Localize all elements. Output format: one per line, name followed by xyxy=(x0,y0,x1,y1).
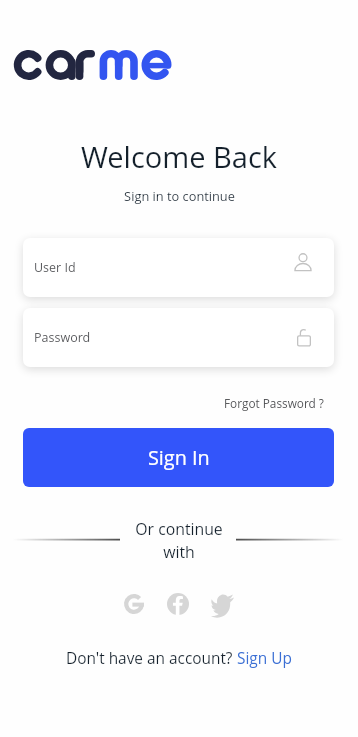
staticText: Or continue with xyxy=(129,518,229,562)
button[interactable]: carme xyxy=(8,42,180,88)
button[interactable]: Forgot Password ? xyxy=(220,392,328,414)
staticText: User Id xyxy=(34,259,76,276)
button[interactable]: Sign in with Twitter xyxy=(211,594,234,617)
staticText: Don't have an account? xyxy=(66,648,237,669)
staticText: Forgot Password ? xyxy=(224,395,324,411)
button[interactable]: Sign In xyxy=(23,428,334,487)
button[interactable]: Password xyxy=(23,308,334,367)
staticText: Sign In xyxy=(148,444,210,471)
staticText: Welcome Back xyxy=(81,137,277,176)
button[interactable]: Sign in with Google xyxy=(124,594,144,614)
button[interactable]: Sign Up xyxy=(237,648,292,669)
staticText: Sign Up xyxy=(237,648,292,669)
button[interactable]: User Id xyxy=(23,238,334,297)
button[interactable]: Sign in with Facebook xyxy=(167,593,189,615)
staticText: Sign in to continue xyxy=(124,187,235,204)
staticText: Password xyxy=(34,329,91,346)
